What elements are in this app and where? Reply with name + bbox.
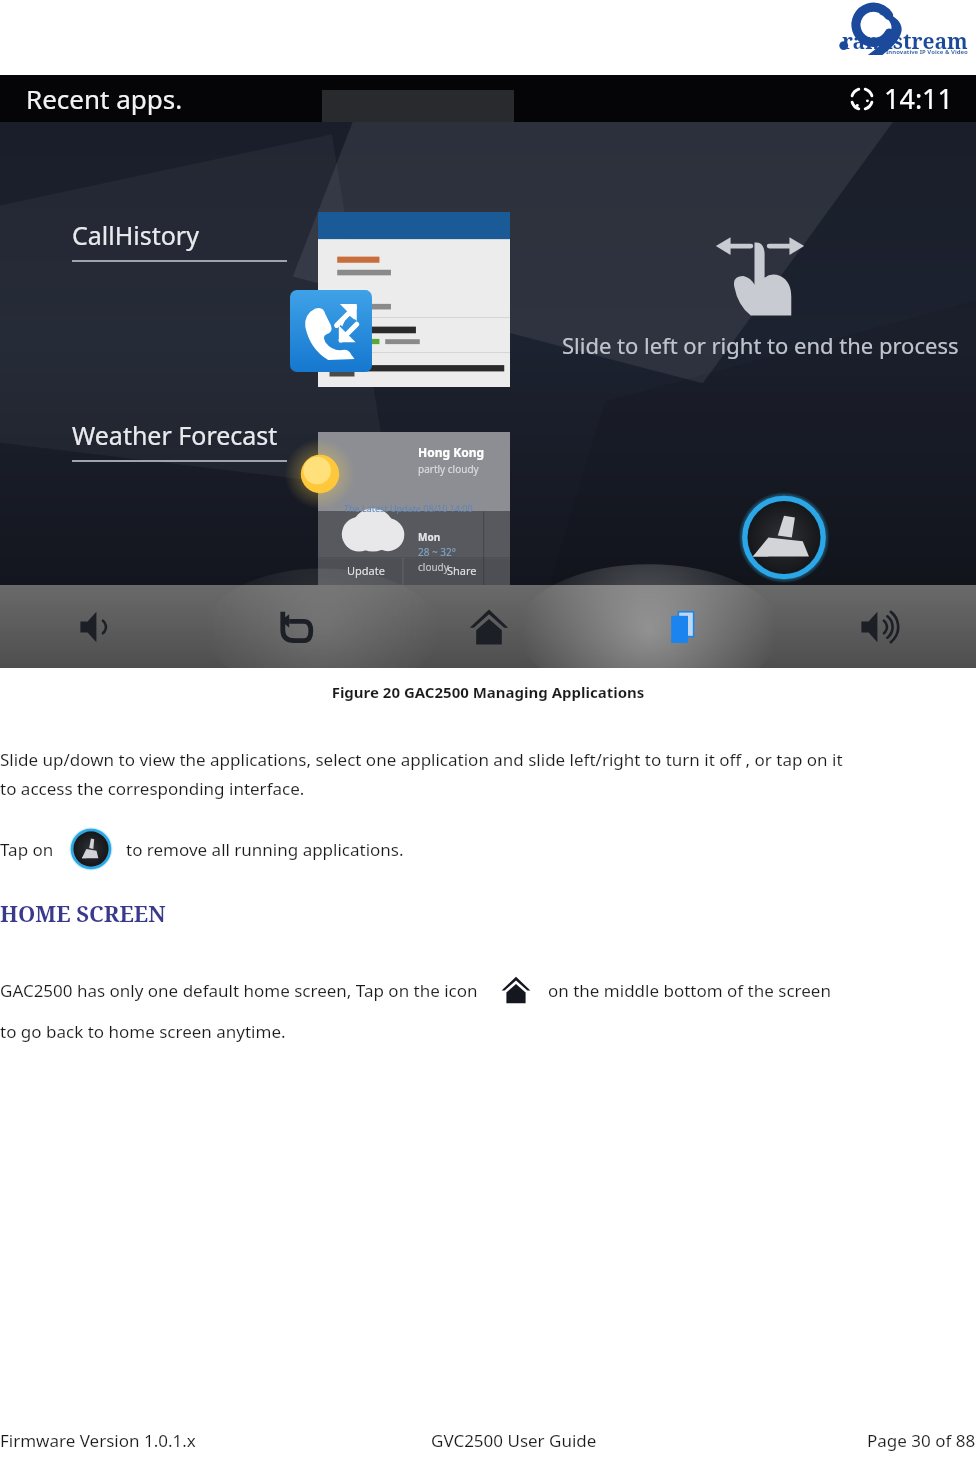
button[interactable]: Back	[196, 585, 391, 668]
staticText: Weather Forecast	[72, 418, 278, 452]
button[interactable]: Remove all running applications	[68, 826, 114, 872]
staticText: HOME SCREEN	[0, 898, 166, 928]
staticText: Update	[347, 563, 385, 578]
button[interactable]: Home	[498, 972, 534, 1008]
staticText: Hong Kong	[418, 444, 485, 460]
staticText: Mon	[418, 530, 441, 544]
button[interactable]: Home	[391, 585, 586, 668]
staticText: to go back to home screen anytime.	[0, 1020, 286, 1043]
staticText: Slide up/down to view the applications, …	[0, 748, 976, 771]
staticText: on the middle bottom of the screen	[548, 979, 831, 1002]
staticText: partly cloudy	[418, 462, 479, 476]
staticText: to remove all running applications.	[126, 838, 404, 861]
staticText: Firmware Version 1.0.1.x	[0, 1429, 196, 1452]
staticText: randstream	[842, 27, 968, 56]
staticText: 28 ~ 32°	[418, 545, 457, 559]
staticText: Share	[447, 563, 477, 578]
button[interactable]	[318, 212, 510, 387]
button[interactable]: Volume up	[781, 585, 976, 668]
button[interactable]: Volume down	[0, 585, 196, 668]
staticText: Innovative IP Voice & Video	[886, 48, 968, 56]
button[interactable]: Hong Kong	[318, 432, 510, 585]
staticText: CallHistory	[72, 218, 199, 252]
button[interactable]: Weather Forecast	[72, 418, 287, 462]
staticText: GVC2500 User Guide	[431, 1429, 597, 1452]
button[interactable]: Recent apps	[586, 585, 781, 668]
button[interactable]: Update	[318, 555, 414, 585]
staticText: Recent apps.	[26, 81, 183, 116]
staticText: Figure 20 GAC2500 Managing Applications	[0, 682, 976, 702]
button[interactable]: Share	[414, 555, 510, 585]
button[interactable]: Clear all apps	[706, 490, 862, 585]
staticText: GAC2500 has only one default home screen…	[0, 979, 478, 1002]
staticText: Page 30 of 88	[867, 1429, 976, 1452]
staticText: Slide to left or right to end the proces…	[562, 330, 959, 360]
staticText: Tap on	[0, 838, 54, 861]
staticText: to access the corresponding interface.	[0, 777, 305, 800]
staticText: cloudy	[418, 560, 449, 574]
staticText: 14:11	[884, 80, 954, 117]
button[interactable]: CallHistory	[72, 218, 287, 262]
staticText: The Latest Update 08/10 14:00	[344, 502, 473, 514]
